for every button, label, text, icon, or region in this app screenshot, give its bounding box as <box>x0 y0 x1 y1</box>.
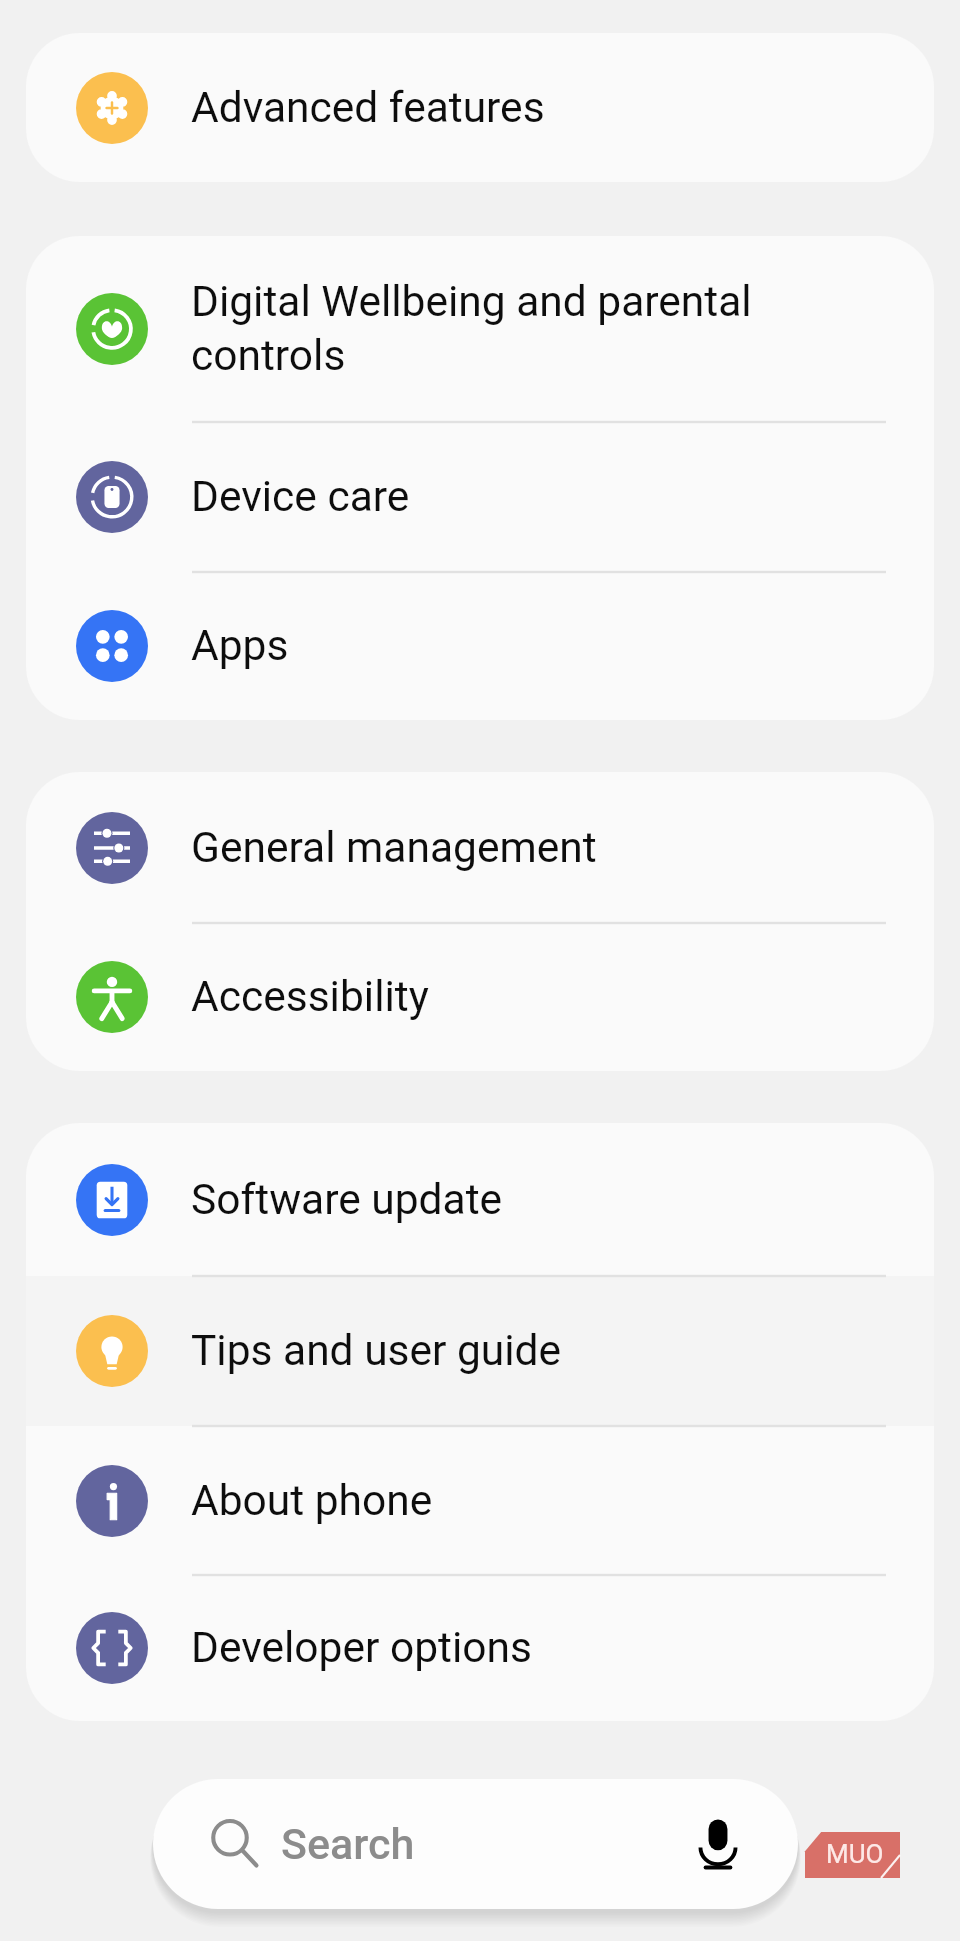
button[interactable]: About phone <box>26 1426 934 1575</box>
button[interactable]: Accessibility <box>26 923 934 1071</box>
staticText: Accessibility <box>191 972 429 1022</box>
staticText: Device care <box>191 472 410 522</box>
staticText: MUO <box>826 1839 884 1869</box>
button[interactable]: Search <box>153 1779 798 1909</box>
staticText: Software update <box>191 1175 503 1225</box>
button[interactable]: General management <box>26 772 934 923</box>
other: Voice search <box>691 1817 745 1871</box>
button[interactable]: Digital Wellbeing and parental controls <box>26 236 934 422</box>
staticText: General management <box>191 823 597 873</box>
staticText: Search <box>281 1819 415 1869</box>
staticText: Advanced features <box>191 83 545 133</box>
button[interactable]: Software update <box>26 1123 934 1276</box>
staticText: Apps <box>191 621 289 671</box>
staticText: Developer options <box>191 1623 532 1673</box>
button[interactable]: Device care <box>26 422 934 572</box>
button[interactable]: Tips and user guide <box>26 1276 934 1426</box>
button[interactable]: Advanced features <box>26 33 934 182</box>
staticText: About phone <box>191 1476 433 1526</box>
staticText: Tips and user guide <box>191 1326 562 1376</box>
button[interactable]: Apps <box>26 572 934 720</box>
button[interactable]: Developer options <box>26 1575 934 1721</box>
staticText: Digital Wellbeing and parental controls <box>191 277 752 381</box>
